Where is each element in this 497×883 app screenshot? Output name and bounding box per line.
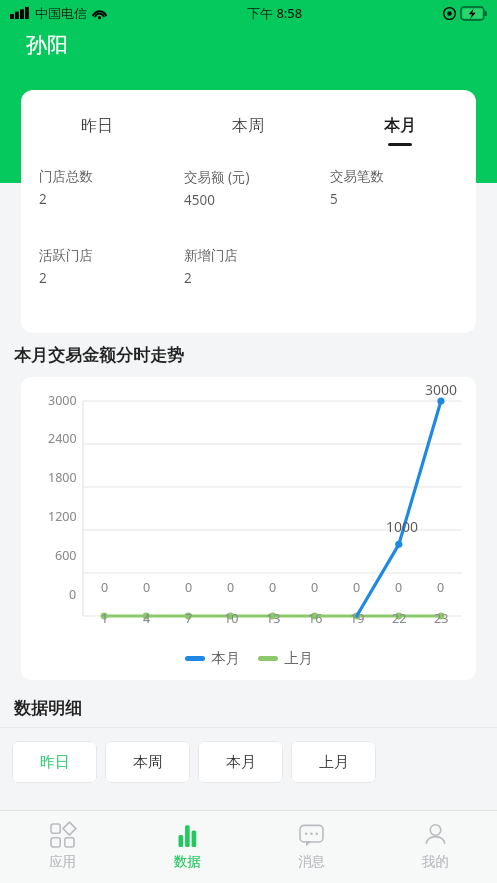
staticText: 中国电信 (35, 5, 87, 21)
staticText: 本周 (133, 753, 163, 772)
staticText: 0 (143, 579, 151, 596)
staticText: 本月 (384, 116, 416, 136)
staticText: 应用 (49, 853, 76, 870)
staticText: 上月 (319, 753, 349, 772)
button[interactable]: 我的 (373, 811, 497, 883)
staticText: 上月 (284, 649, 313, 667)
staticText: 本月交易金额分时走势 (14, 345, 184, 366)
staticText: 下午 8:58 (247, 4, 303, 22)
staticText: 0 (101, 579, 109, 596)
staticText: 0 (395, 579, 403, 596)
staticText: 1800 (48, 469, 77, 486)
staticText: 22 (392, 610, 407, 627)
staticText: 新增门店 (184, 247, 238, 264)
button[interactable]: 上月 (291, 741, 376, 783)
other: 数据 (176, 824, 199, 847)
staticText: 1000 (386, 517, 419, 536)
staticText: 数据 (174, 853, 201, 870)
staticText: 消息 (298, 853, 325, 870)
staticText: 交易笔数 (330, 168, 384, 185)
button[interactable]: 消息 (249, 811, 373, 883)
staticText: 0 (185, 579, 193, 596)
staticText: 1200 (48, 508, 77, 525)
staticText: 2400 (48, 430, 77, 447)
staticText: 0 (227, 579, 235, 596)
staticText: 0 (269, 579, 277, 596)
other: 我的 (424, 824, 447, 847)
button[interactable]: 本月 (198, 741, 283, 783)
staticText: 0 (437, 579, 445, 596)
staticText: 4 (143, 610, 151, 627)
staticText: 昨日 (40, 753, 70, 772)
button[interactable]: 昨日 (21, 116, 172, 143)
staticText: 3000 (425, 380, 458, 399)
staticText: 7 (185, 610, 193, 627)
staticText: 13 (266, 610, 281, 627)
other: 消息 (300, 824, 323, 847)
staticText: 3000 (48, 392, 77, 409)
button[interactable]: 本周 (105, 741, 190, 783)
staticText: 0 (69, 586, 77, 603)
staticText: 本月 (226, 753, 256, 772)
staticText: 昨日 (81, 116, 113, 136)
staticText: 5 (330, 190, 338, 208)
staticText: 2 (39, 269, 47, 287)
staticText: 交易额 (元) (184, 168, 250, 186)
staticText: 数据明细 (14, 698, 82, 719)
other: 应用 (51, 824, 74, 847)
button[interactable]: 数据 (125, 811, 249, 883)
staticText: 4500 (184, 191, 215, 209)
staticText: 本月 (211, 649, 240, 667)
staticText: 门店总数 (39, 168, 93, 185)
staticText: 本周 (232, 116, 264, 136)
staticText: 2 (184, 269, 192, 287)
staticText: 600 (55, 547, 77, 564)
staticText: 活跃门店 (39, 247, 93, 264)
staticText: 1 (101, 610, 109, 627)
staticText: 0 (311, 579, 319, 596)
button[interactable]: 应用 (0, 811, 125, 883)
button[interactable]: 本周 (172, 116, 324, 143)
staticText: 19 (350, 610, 365, 627)
staticText: 10 (224, 610, 239, 627)
staticText: 23 (434, 610, 449, 627)
staticText: 0 (353, 579, 361, 596)
button[interactable]: 本月 (324, 116, 476, 146)
staticText: 我的 (422, 853, 449, 870)
staticText: 16 (308, 610, 323, 627)
staticText: 孙阳 (26, 32, 68, 58)
staticText: 2 (39, 190, 47, 208)
button[interactable]: 昨日 (12, 741, 97, 783)
